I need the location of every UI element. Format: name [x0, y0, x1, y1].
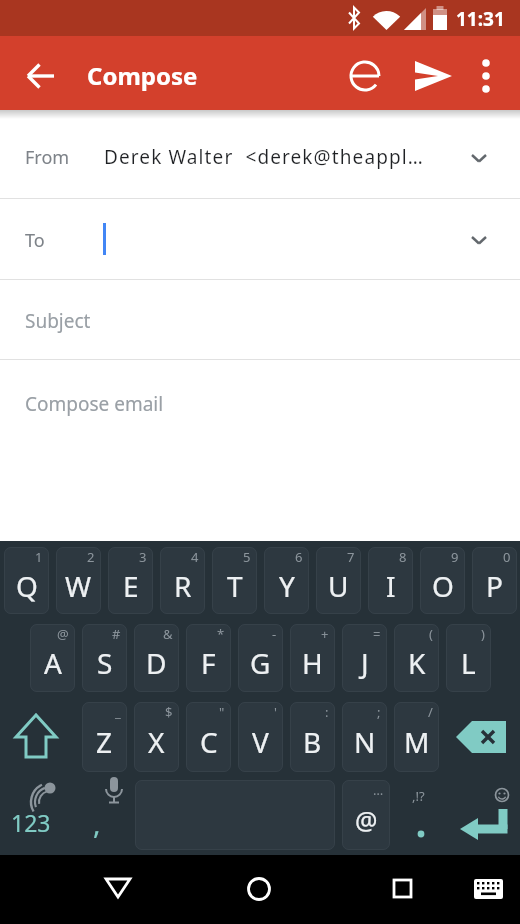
- staticText: ': [274, 703, 277, 721]
- staticText: ": [219, 703, 225, 721]
- staticText: S: [97, 644, 113, 682]
- button[interactable]: B: [290, 702, 335, 772]
- button[interactable]: A: [30, 624, 75, 692]
- button[interactable]: S: [82, 624, 127, 692]
- button[interactable]: [392, 878, 414, 900]
- button[interactable]: X: [134, 702, 179, 772]
- staticText: 2: [87, 548, 95, 566]
- button[interactable]: P: [472, 547, 517, 614]
- staticText: L: [461, 644, 476, 682]
- button[interactable]: W: [56, 547, 101, 614]
- button[interactable]: [348, 61, 382, 91]
- staticText: D: [146, 644, 167, 682]
- staticText: 3: [139, 548, 147, 566]
- staticText: Derek Walter <derek@theappl…: [104, 144, 424, 170]
- staticText: C: [200, 723, 218, 761]
- staticText: :: [325, 703, 329, 721]
- button[interactable]: [0, 280, 520, 359]
- staticText: P: [486, 567, 503, 605]
- staticText: K: [408, 644, 426, 682]
- button[interactable]: V: [238, 702, 283, 772]
- staticText: 5: [243, 548, 251, 566]
- staticText: O: [432, 567, 454, 605]
- button[interactable]: [414, 60, 454, 92]
- staticText: Z: [96, 723, 113, 761]
- staticText: 1: [35, 548, 43, 566]
- staticText: ): [481, 625, 485, 643]
- button[interactable]: [102, 775, 126, 811]
- staticText: From: [25, 145, 70, 170]
- button[interactable]: T: [212, 547, 257, 614]
- button[interactable]: [24, 780, 60, 806]
- staticText: 4: [191, 548, 199, 566]
- staticText: 7: [347, 548, 355, 566]
- button[interactable]: O: [420, 547, 465, 614]
- staticText: -: [272, 625, 277, 643]
- staticText: V: [252, 723, 269, 761]
- staticText: Y: [279, 567, 295, 605]
- staticText: W: [65, 567, 92, 605]
- staticText: /: [428, 703, 433, 721]
- staticText: H: [302, 644, 323, 682]
- button[interactable]: [246, 876, 272, 902]
- staticText: I: [386, 567, 396, 605]
- staticText: Q: [16, 567, 38, 605]
- button[interactable]: M: [394, 702, 439, 772]
- button[interactable]: @: [342, 780, 390, 850]
- button[interactable]: D: [134, 624, 179, 692]
- button[interactable]: U: [316, 547, 361, 614]
- button[interactable]: I: [368, 547, 413, 614]
- staticText: *: [217, 625, 225, 643]
- button[interactable]: J: [342, 624, 387, 692]
- staticText: #: [112, 625, 121, 643]
- button[interactable]: C: [186, 702, 231, 772]
- button[interactable]: Z: [82, 702, 127, 772]
- button[interactable]: [452, 801, 512, 847]
- button[interactable]: E: [108, 547, 153, 614]
- button[interactable]: N: [342, 702, 387, 772]
- staticText: (: [429, 625, 433, 643]
- staticText: =: [373, 625, 381, 643]
- button[interactable]: [452, 717, 512, 757]
- staticText: A: [44, 644, 62, 682]
- button[interactable]: [414, 827, 428, 841]
- button[interactable]: [104, 877, 132, 901]
- staticText: M: [404, 723, 430, 761]
- staticText: Subject: [25, 308, 91, 334]
- button[interactable]: [0, 110, 520, 198]
- button[interactable]: Y: [264, 547, 309, 614]
- staticText: &: [163, 625, 173, 643]
- staticText: ,!?: [412, 787, 425, 805]
- staticText: _: [115, 703, 121, 721]
- staticText: @: [57, 625, 69, 643]
- staticText: 11:31: [456, 6, 505, 32]
- button[interactable]: Q: [4, 547, 49, 614]
- button[interactable]: L: [446, 624, 491, 692]
- button[interactable]: R: [160, 547, 205, 614]
- button[interactable]: [0, 199, 520, 279]
- button[interactable]: K: [394, 624, 439, 692]
- staticText: 9: [451, 548, 459, 566]
- staticText: N: [354, 723, 376, 761]
- button[interactable]: ,: [0, 541, 8, 579]
- button[interactable]: [26, 62, 56, 90]
- staticText: ;: [377, 703, 381, 721]
- staticText: 6: [295, 548, 303, 566]
- staticText: …: [373, 781, 384, 799]
- button[interactable]: [478, 58, 494, 94]
- button[interactable]: [14, 713, 58, 761]
- staticText: J: [361, 644, 369, 682]
- button[interactable]: [0, 360, 520, 541]
- button[interactable]: F: [186, 624, 231, 692]
- staticText: B: [303, 723, 322, 761]
- button[interactable]: H: [290, 624, 335, 692]
- button[interactable]: [472, 878, 506, 902]
- staticText: 8: [399, 548, 407, 566]
- staticText: Compose email: [25, 391, 164, 417]
- staticText: E: [123, 567, 139, 605]
- staticText: 0: [503, 548, 511, 566]
- staticText: T: [227, 567, 243, 605]
- button[interactable]: G: [238, 624, 283, 692]
- button[interactable]: 123: [0, 541, 40, 572]
